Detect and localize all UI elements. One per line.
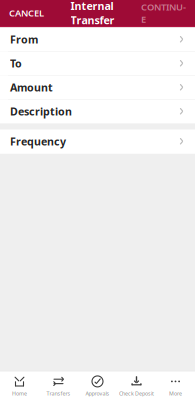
button[interactable]: To (0, 51, 195, 75)
button[interactable]: Approvals (78, 371, 117, 400)
button[interactable]: Amount (0, 75, 195, 99)
staticText: Frequency (10, 134, 66, 148)
staticText: CANCEL (9, 7, 44, 19)
staticText: Internal Transfer (70, 0, 114, 27)
button[interactable]: More (156, 371, 195, 400)
staticText: Amount (10, 80, 53, 94)
staticText: Check Deposit (119, 390, 154, 397)
staticText: Home (12, 390, 27, 397)
staticText: Transfers (46, 390, 70, 397)
staticText: Approvals (85, 390, 109, 397)
button[interactable]: Transfers (39, 371, 78, 400)
button[interactable]: Check Deposit (117, 371, 156, 400)
staticText: CONTINUE (141, 1, 186, 25)
button[interactable]: Frequency (0, 129, 195, 153)
staticText: More (169, 390, 182, 397)
button[interactable]: Description (0, 99, 195, 123)
staticText: Description (10, 104, 72, 118)
button[interactable]: CANCEL (0, 1, 53, 25)
staticText: From (10, 32, 38, 46)
button[interactable]: CONTINUE (132, 0, 195, 31)
staticText: To (10, 56, 22, 70)
button[interactable]: From (0, 27, 195, 51)
button[interactable]: Home (0, 371, 39, 400)
